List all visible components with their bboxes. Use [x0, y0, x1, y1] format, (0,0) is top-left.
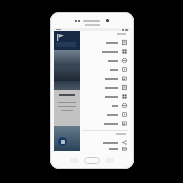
button[interactable]: [80, 110, 130, 119]
button[interactable]: [54, 28, 80, 151]
button[interactable]: [80, 147, 130, 151]
button[interactable]: [54, 50, 80, 66]
button[interactable]: [80, 74, 130, 83]
button[interactable]: [80, 38, 130, 47]
button[interactable]: [54, 81, 80, 90]
button[interactable]: [54, 66, 80, 81]
button[interactable]: [80, 92, 130, 101]
button[interactable]: [80, 56, 130, 65]
button[interactable]: [80, 65, 130, 74]
button[interactable]: [80, 119, 130, 128]
button[interactable]: [80, 83, 130, 92]
button[interactable]: [80, 101, 130, 110]
button[interactable]: [80, 47, 130, 56]
button[interactable]: Home: [84, 157, 100, 164]
button[interactable]: Compose: [58, 137, 67, 146]
button[interactable]: [80, 138, 130, 147]
